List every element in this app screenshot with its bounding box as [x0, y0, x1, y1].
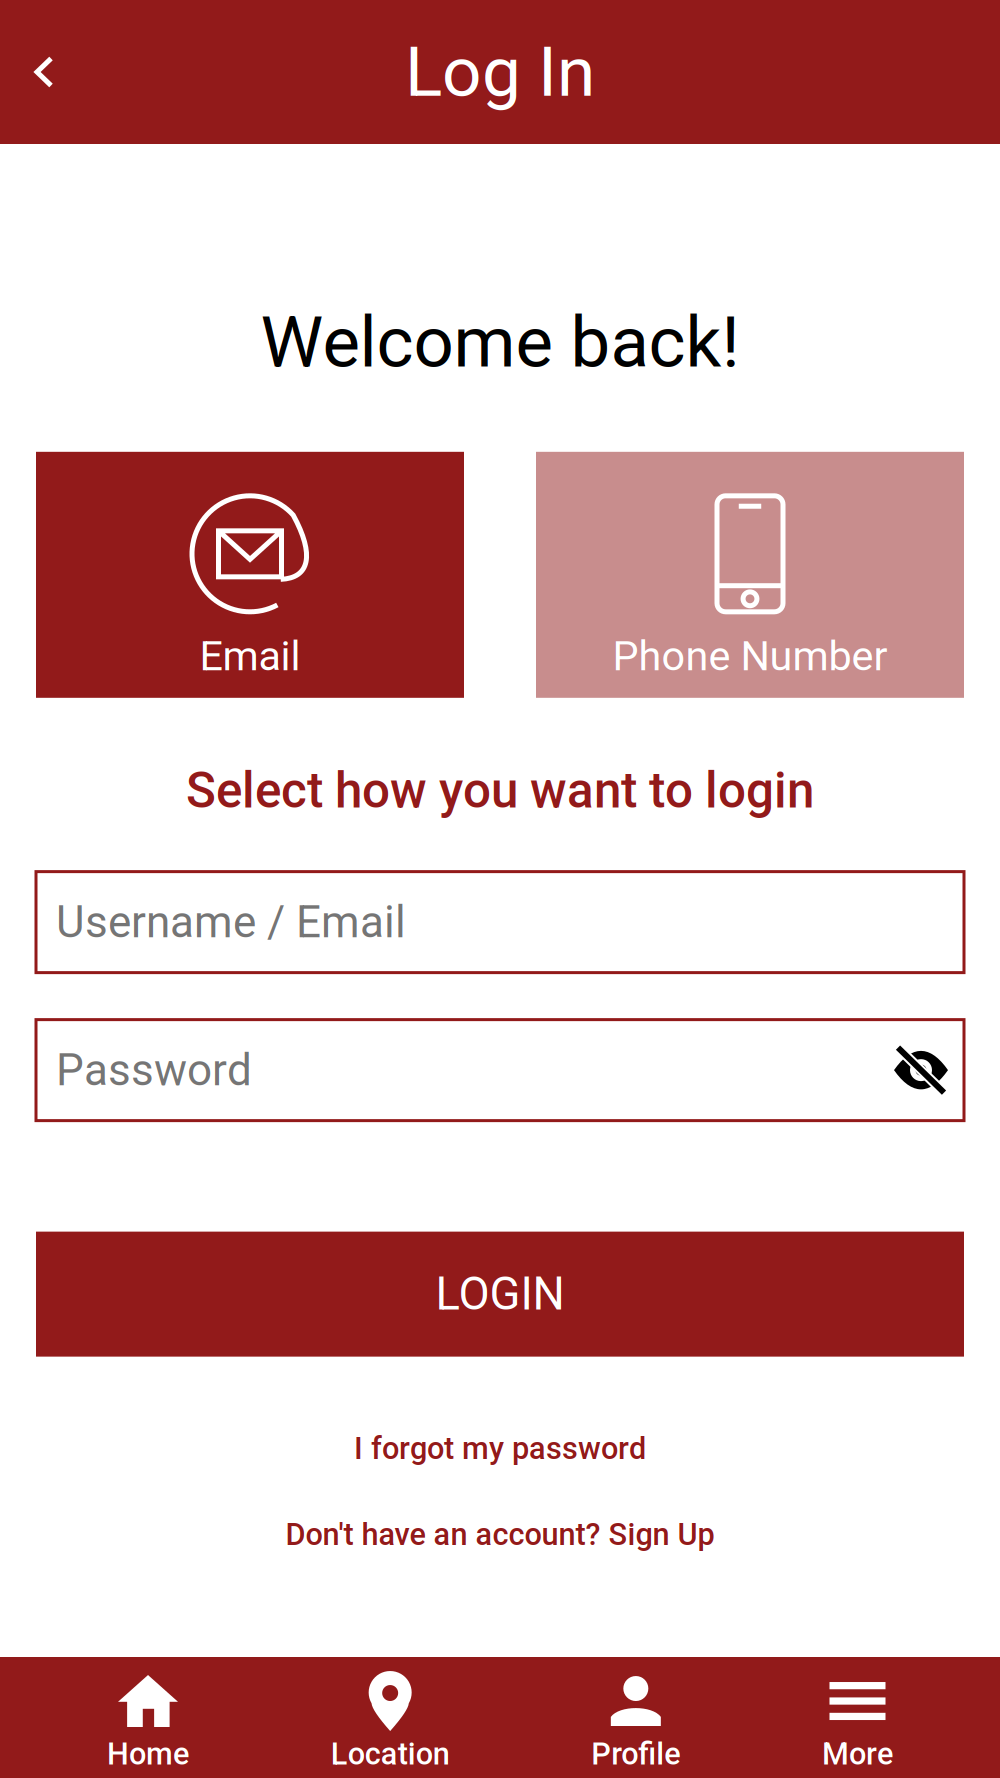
staticText: I forgot my password [354, 1431, 646, 1467]
staticText: Home [107, 1736, 189, 1772]
staticText: Email [199, 632, 300, 680]
button[interactable]: Email [36, 452, 464, 698]
button[interactable]: I forgot my password [0, 1432, 1000, 1466]
button[interactable]: Home [107, 1653, 189, 1778]
button[interactable]: Show password [890, 1039, 952, 1101]
button[interactable]: More [822, 1653, 893, 1778]
staticText: Location [331, 1736, 450, 1772]
staticText: Select how you want to login [186, 762, 814, 820]
button[interactable]: LOGIN [36, 1232, 964, 1357]
staticText: Profile [591, 1736, 680, 1772]
staticText: Don't have an account? Sign Up [285, 1517, 714, 1553]
staticText: Welcome back! [260, 301, 739, 384]
button[interactable]: Location [331, 1653, 450, 1778]
staticText: Password [56, 1044, 252, 1096]
staticText: Phone Number [612, 632, 887, 680]
staticText: Username / Email [56, 896, 406, 948]
button[interactable]: Phone Number [536, 452, 964, 698]
staticText: Log In [405, 31, 595, 113]
button[interactable]: Don't have an account? Sign Up [0, 1518, 1000, 1552]
button[interactable]: Back [0, 10, 95, 133]
button[interactable]: Profile [591, 1653, 680, 1778]
staticText: More [822, 1736, 893, 1772]
staticText: LOGIN [435, 1268, 564, 1321]
